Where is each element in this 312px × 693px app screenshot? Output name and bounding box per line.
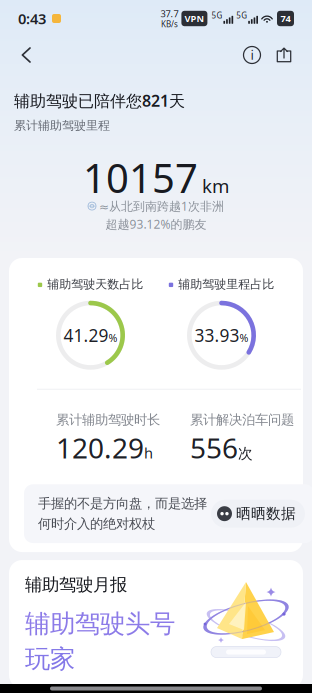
button[interactable]: Back <box>21 38 51 72</box>
staticText: 晒晒数据 <box>236 505 296 523</box>
staticText: 33.93 <box>194 324 239 347</box>
staticText: 超越93.12%的鹏友 <box>105 216 206 232</box>
staticText: 41.29 <box>63 324 108 347</box>
staticText: 556 <box>190 429 238 466</box>
staticText: 120.29 <box>56 429 144 466</box>
staticText: 辅助驾驶天数占比 <box>47 277 143 292</box>
staticText: km <box>202 173 229 198</box>
button[interactable]: Share <box>267 38 301 72</box>
staticText: 5G <box>211 10 222 21</box>
staticText: 5G <box>236 10 247 21</box>
staticText: i <box>250 46 253 63</box>
staticText: h <box>144 443 153 463</box>
staticText: KB/s <box>161 19 178 29</box>
staticText: 辅助驾驶里程占比 <box>178 277 274 292</box>
staticText: 累计解决泊车问题 <box>190 412 294 428</box>
staticText: 城市道路就是您的开放世界，而 <box>25 687 207 693</box>
staticText: 累计辅助驾驶里程 <box>14 118 110 133</box>
staticText: 辅助驾驶月报 <box>25 574 127 595</box>
staticText: 玩家 <box>25 643 75 675</box>
staticText: 辅助驾驶头号 <box>25 608 175 639</box>
staticText: 0:43 <box>18 9 46 28</box>
staticText: 辅助驾驶已陪伴您821天 <box>14 90 185 111</box>
button[interactable]: 晒晒数据 <box>211 500 305 528</box>
staticText: VPN <box>184 12 204 25</box>
staticText: 74 <box>280 12 290 25</box>
staticText: 10157 <box>83 151 198 204</box>
staticText: ≈从北到南跨越1次非洲 <box>99 198 224 214</box>
staticText: % <box>239 331 248 345</box>
staticText: 手握的不是方向盘，而是选择 <box>38 495 207 512</box>
staticText: % <box>108 331 117 345</box>
staticText: 累计辅助驾驶时长 <box>56 412 160 428</box>
button[interactable]: Info <box>237 38 267 72</box>
staticText: 37.7 <box>160 7 178 20</box>
staticText: 何时介入的绝对权杖 <box>38 516 155 532</box>
staticText: 次 <box>238 445 253 463</box>
